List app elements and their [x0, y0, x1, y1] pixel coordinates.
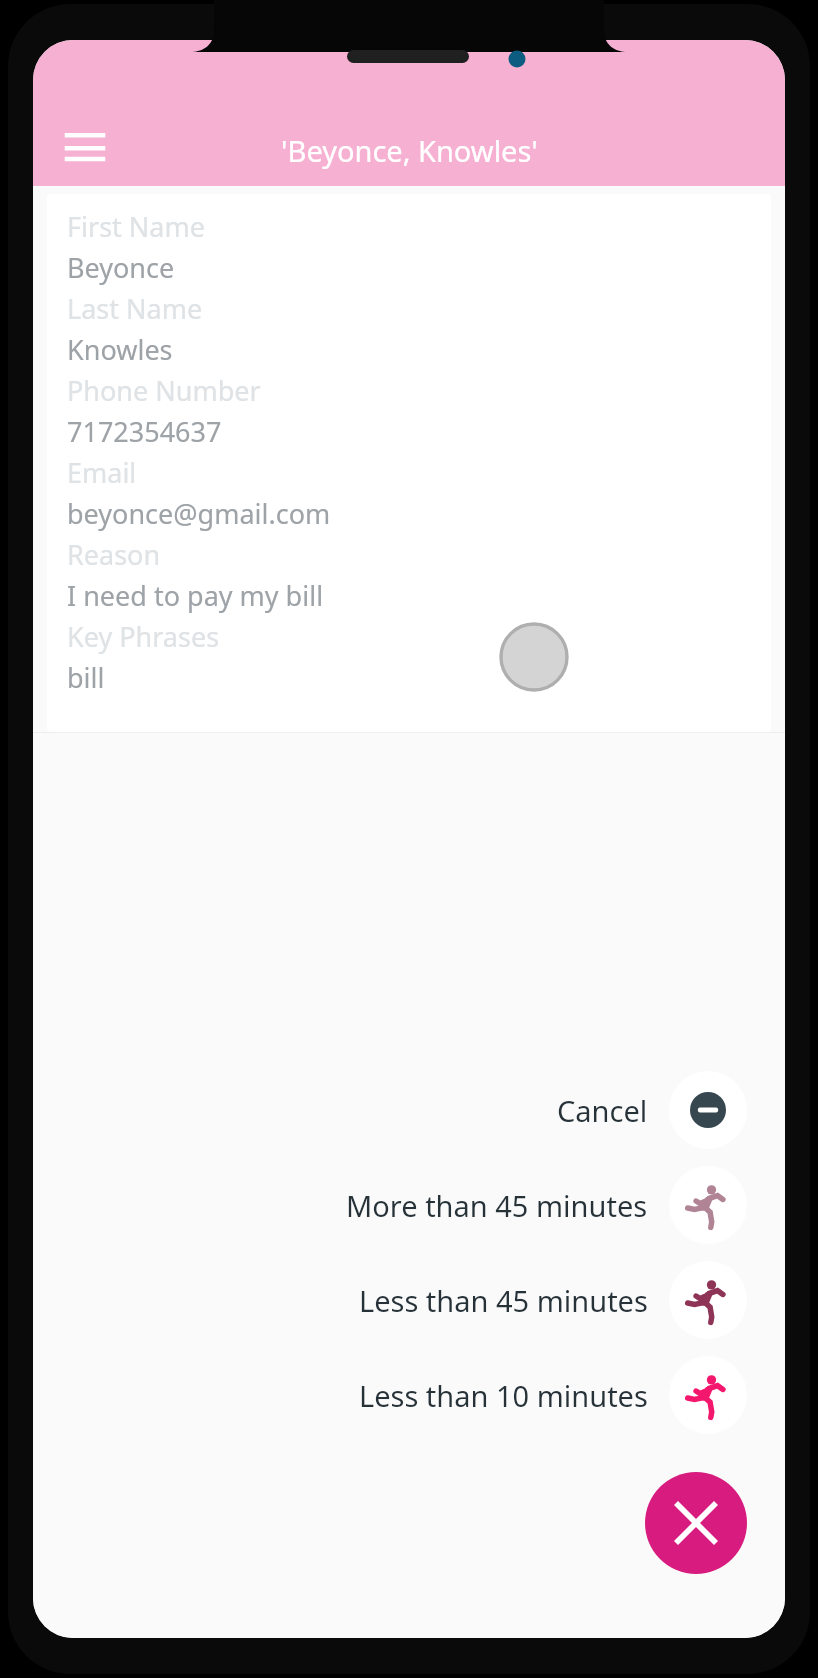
staticText: Less than 10 minutes	[359, 1376, 648, 1415]
staticText: Key Phrases	[67, 618, 220, 655]
staticText: Phone Number	[67, 372, 261, 409]
staticText: More than 45 minutes	[346, 1186, 648, 1225]
button[interactable]: More than 45 minutes	[346, 1166, 747, 1244]
button[interactable]: Less than 10 minutes	[359, 1356, 747, 1434]
staticText: Cancel	[557, 1091, 648, 1130]
staticText: I need to pay my bill	[67, 577, 324, 614]
button[interactable]: Close speed dial	[645, 1472, 747, 1574]
staticText: Reason	[67, 536, 161, 573]
staticText: Beyonce	[67, 249, 175, 286]
button[interactable]: Less than 45 minutes	[359, 1261, 747, 1339]
staticText: Knowles	[67, 331, 173, 368]
staticText: bill	[67, 659, 105, 696]
button[interactable]: Open navigation menu	[55, 116, 115, 176]
staticText: Less than 45 minutes	[359, 1281, 648, 1320]
staticText: Email	[67, 454, 137, 491]
staticText: First Name	[67, 208, 205, 245]
staticText: 'Beyonce, Knowles'	[281, 131, 538, 170]
staticText: beyonce@gmail.com	[67, 495, 331, 532]
staticText: Last Name	[67, 290, 203, 327]
button[interactable]: Cancel	[557, 1071, 747, 1149]
staticText: 7172354637	[67, 413, 222, 450]
